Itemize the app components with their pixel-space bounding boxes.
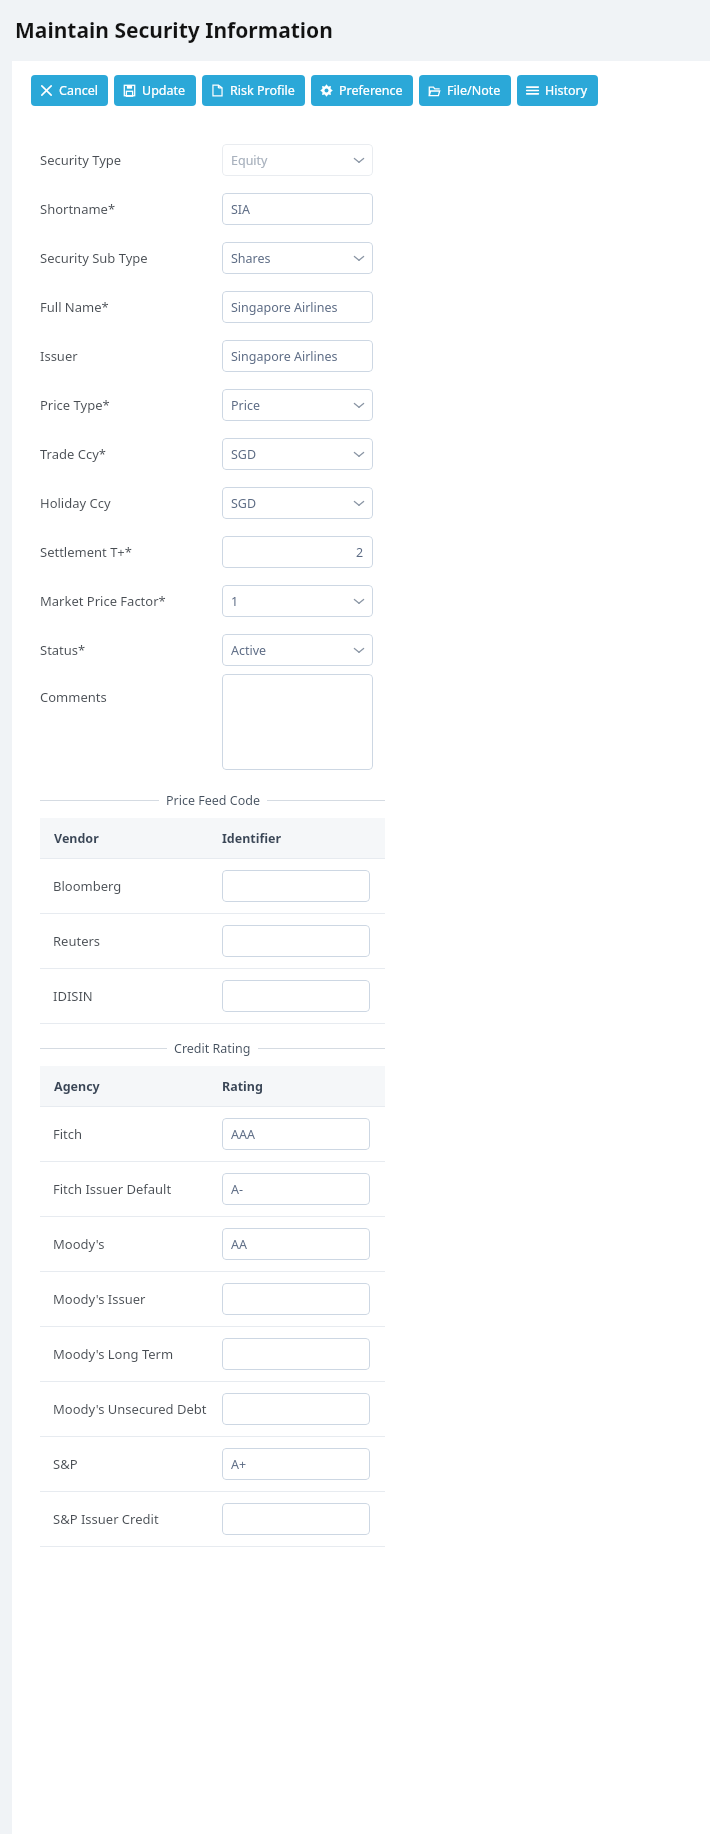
staticText: Holiday Ccy — [40, 494, 111, 512]
staticText: Active — [231, 642, 267, 659]
button[interactable]: Equity — [222, 144, 373, 176]
button[interactable]: Update — [114, 75, 196, 106]
button[interactable]: SGD — [222, 487, 373, 519]
staticText: Status* — [40, 641, 86, 659]
staticText: Fitch Issuer Default — [53, 1180, 172, 1198]
staticText: Moody's — [53, 1235, 105, 1253]
button[interactable]: Price — [222, 389, 373, 421]
button[interactable] — [222, 1393, 370, 1425]
staticText: Shares — [231, 250, 271, 267]
button[interactable]: Cancel — [31, 75, 108, 106]
button[interactable]: Active — [222, 634, 373, 666]
staticText: Settlement T+* — [40, 543, 132, 561]
button[interactable]: Shares — [222, 242, 373, 274]
staticText: Reuters — [53, 932, 101, 950]
staticText: Market Price Factor* — [40, 592, 166, 610]
staticText: Price Type* — [40, 396, 110, 414]
staticText: A- — [231, 1181, 244, 1198]
staticText: Price Feed Code — [166, 792, 260, 809]
staticText: SGD — [231, 495, 257, 512]
button[interactable]: Preference — [311, 75, 413, 106]
staticText: Agency — [54, 1078, 222, 1095]
button[interactable]: SIA — [222, 193, 373, 225]
staticText: Risk Profile — [230, 82, 295, 99]
staticText: Full Name* — [40, 298, 109, 316]
button[interactable] — [222, 1283, 370, 1315]
staticText: SGD — [231, 446, 257, 463]
staticText: Credit Rating — [174, 1040, 251, 1057]
staticText: SIA — [231, 201, 251, 218]
button[interactable] — [222, 870, 370, 902]
staticText: File/Note — [447, 82, 501, 99]
staticText: Moody's Unsecured Debt — [53, 1400, 207, 1418]
button[interactable] — [222, 925, 370, 957]
staticText: Security Type — [40, 151, 122, 169]
staticText: AAA — [231, 1126, 255, 1143]
staticText: Preference — [339, 82, 403, 99]
button[interactable] — [222, 1338, 370, 1370]
staticText: Vendor — [54, 830, 222, 847]
staticText: Singapore Airlines — [231, 348, 338, 365]
staticText: 2 — [356, 544, 364, 561]
button[interactable] — [222, 980, 370, 1012]
button[interactable]: History — [517, 75, 598, 106]
button[interactable]: A+ — [222, 1448, 370, 1480]
staticText: Shortname* — [40, 200, 116, 218]
staticText: Cancel — [59, 82, 98, 99]
staticText: History — [545, 82, 588, 99]
button[interactable]: Risk Profile — [202, 75, 305, 106]
staticText: Identifier — [222, 830, 282, 847]
staticText: Comments — [40, 688, 107, 706]
button[interactable]: SGD — [222, 438, 373, 470]
staticText: S&P Issuer Credit — [53, 1510, 159, 1528]
button[interactable] — [222, 674, 373, 770]
staticText: A+ — [231, 1456, 247, 1473]
staticText: IDISIN — [53, 987, 93, 1005]
staticText: Singapore Airlines — [231, 299, 338, 316]
button[interactable]: File/Note — [419, 75, 511, 106]
button[interactable]: AA — [222, 1228, 370, 1260]
staticText: Equity — [231, 152, 268, 169]
button[interactable]: 2 — [222, 536, 373, 568]
staticText: Price — [231, 397, 261, 414]
staticText: Fitch — [53, 1125, 83, 1143]
button[interactable]: Singapore Airlines — [222, 291, 373, 323]
staticText: Issuer — [40, 347, 78, 365]
staticText: Trade Ccy* — [40, 445, 106, 463]
button[interactable]: 1 — [222, 585, 373, 617]
staticText: Bloomberg — [53, 877, 122, 895]
staticText: Moody's Issuer — [53, 1290, 146, 1308]
staticText: S&P — [53, 1455, 78, 1473]
staticText: Moody's Long Term — [53, 1345, 174, 1363]
button[interactable]: AAA — [222, 1118, 370, 1150]
staticText: Security Sub Type — [40, 249, 148, 267]
button[interactable]: A- — [222, 1173, 370, 1205]
staticText: Update — [142, 82, 186, 99]
button[interactable] — [222, 1503, 370, 1535]
staticText: 1 — [231, 593, 239, 610]
staticText: Maintain Security Information — [15, 16, 333, 45]
staticText: AA — [231, 1236, 247, 1253]
button[interactable]: Singapore Airlines — [222, 340, 373, 372]
staticText: Rating — [222, 1078, 263, 1095]
